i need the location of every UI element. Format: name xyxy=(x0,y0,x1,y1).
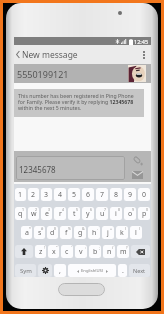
staticText: k xyxy=(120,228,124,238)
button[interactable]: English(US) xyxy=(68,264,116,277)
staticText: ) xyxy=(139,226,141,231)
staticText: 8 xyxy=(118,207,121,212)
staticText: 2 xyxy=(35,207,38,212)
button[interactable]: m xyxy=(117,245,129,258)
staticText: 8 xyxy=(114,190,119,200)
staticText: New message xyxy=(22,49,78,61)
button[interactable]: s xyxy=(34,226,45,239)
button[interactable]: 9 xyxy=(124,188,136,201)
button[interactable]: e xyxy=(41,207,52,220)
staticText: * xyxy=(29,226,31,231)
staticText: p xyxy=(142,209,147,219)
staticText: 1 xyxy=(18,190,23,200)
button[interactable]: z xyxy=(35,245,46,258)
button[interactable]: 4 xyxy=(54,188,66,201)
button[interactable]: 7 xyxy=(96,188,108,201)
button[interactable]: u xyxy=(96,207,108,220)
staticText: & xyxy=(82,226,85,231)
button[interactable]: . xyxy=(118,264,127,277)
button[interactable]: Send xyxy=(130,168,144,182)
staticText: 5 xyxy=(76,207,79,212)
staticText: 7 xyxy=(104,207,107,212)
button[interactable]: c xyxy=(61,245,73,258)
button[interactable]: h xyxy=(88,226,100,239)
button[interactable]: g xyxy=(74,226,86,239)
staticText: 6 xyxy=(86,190,91,200)
button[interactable]: t xyxy=(68,207,80,220)
staticText: 5 xyxy=(72,190,77,200)
staticText: . xyxy=(122,266,124,276)
staticText: z xyxy=(39,247,43,257)
button[interactable]: y xyxy=(82,207,94,220)
staticText: Sym xyxy=(20,267,32,275)
button[interactable]: o xyxy=(124,207,136,220)
staticText: " xyxy=(56,245,58,250)
button[interactable]: q xyxy=(15,207,26,220)
button[interactable]: Attach xyxy=(130,153,144,167)
button[interactable]: Backspace xyxy=(131,245,150,258)
staticText: 12345678 xyxy=(19,164,56,175)
button[interactable]: Next xyxy=(129,264,150,277)
button[interactable]: l xyxy=(130,226,142,239)
button[interactable]: 5550199121 xyxy=(14,64,151,83)
button[interactable]: j xyxy=(102,226,114,239)
staticText: 3 xyxy=(48,207,51,212)
staticText: d xyxy=(50,228,55,238)
staticText: q xyxy=(18,209,23,219)
button[interactable]: More options xyxy=(137,45,151,64)
button[interactable]: w xyxy=(28,207,39,220)
staticText: a xyxy=(25,228,29,238)
staticText: c xyxy=(65,247,69,257)
staticText: English(US) xyxy=(81,268,104,274)
button[interactable]: k xyxy=(116,226,128,239)
staticText: x xyxy=(52,247,56,257)
button[interactable]: Settings xyxy=(38,264,52,277)
staticText: - xyxy=(97,226,99,231)
button[interactable]: 3 xyxy=(41,188,52,201)
staticText: 4 xyxy=(62,207,65,212)
staticText: 2 xyxy=(31,190,36,200)
button[interactable]: f xyxy=(60,226,72,239)
staticText: / xyxy=(112,245,114,250)
staticText: 4 xyxy=(58,190,63,200)
button[interactable]: 2 xyxy=(28,188,39,201)
staticText: 7 xyxy=(100,190,105,200)
button[interactable]: 12345678 xyxy=(16,156,125,180)
staticText: Next xyxy=(133,267,146,274)
staticText: y xyxy=(86,209,90,219)
button[interactable]: Symbols xyxy=(15,264,36,277)
button[interactable]: n xyxy=(103,245,115,258)
staticText: 1 xyxy=(22,207,25,212)
button[interactable]: p xyxy=(138,207,150,220)
staticText: 5550199121 xyxy=(17,68,69,80)
staticText: i xyxy=(115,209,117,219)
button[interactable]: 5 xyxy=(68,188,80,201)
staticText: $ xyxy=(54,226,57,231)
staticText: 0 xyxy=(146,207,149,212)
staticText: 12:45 xyxy=(134,38,149,45)
button[interactable]: d xyxy=(47,226,58,239)
button[interactable]: 0 xyxy=(138,188,150,201)
staticText: : xyxy=(85,245,86,250)
button[interactable]: x xyxy=(48,245,59,258)
staticText: 9 xyxy=(128,190,133,200)
staticText: u xyxy=(100,209,105,219)
button[interactable]: i xyxy=(110,207,122,220)
button[interactable]: 1 xyxy=(15,188,26,201)
staticText: m xyxy=(120,247,127,257)
staticText: f xyxy=(65,228,68,238)
button[interactable]: , xyxy=(54,264,66,277)
button[interactable]: Shift xyxy=(15,245,33,258)
button[interactable]: b xyxy=(89,245,101,258)
button[interactable]: 8 xyxy=(110,188,122,201)
button[interactable]: 6 xyxy=(82,188,94,201)
staticText: ? xyxy=(126,245,128,250)
button[interactable]: a xyxy=(21,226,32,239)
staticText: 0 xyxy=(142,190,147,200)
staticText: b xyxy=(93,247,98,257)
button[interactable]: v xyxy=(75,245,87,258)
staticText: ' xyxy=(71,245,72,250)
button[interactable]: Back xyxy=(14,45,22,64)
staticText: o xyxy=(128,209,133,219)
button[interactable]: r xyxy=(54,207,66,220)
